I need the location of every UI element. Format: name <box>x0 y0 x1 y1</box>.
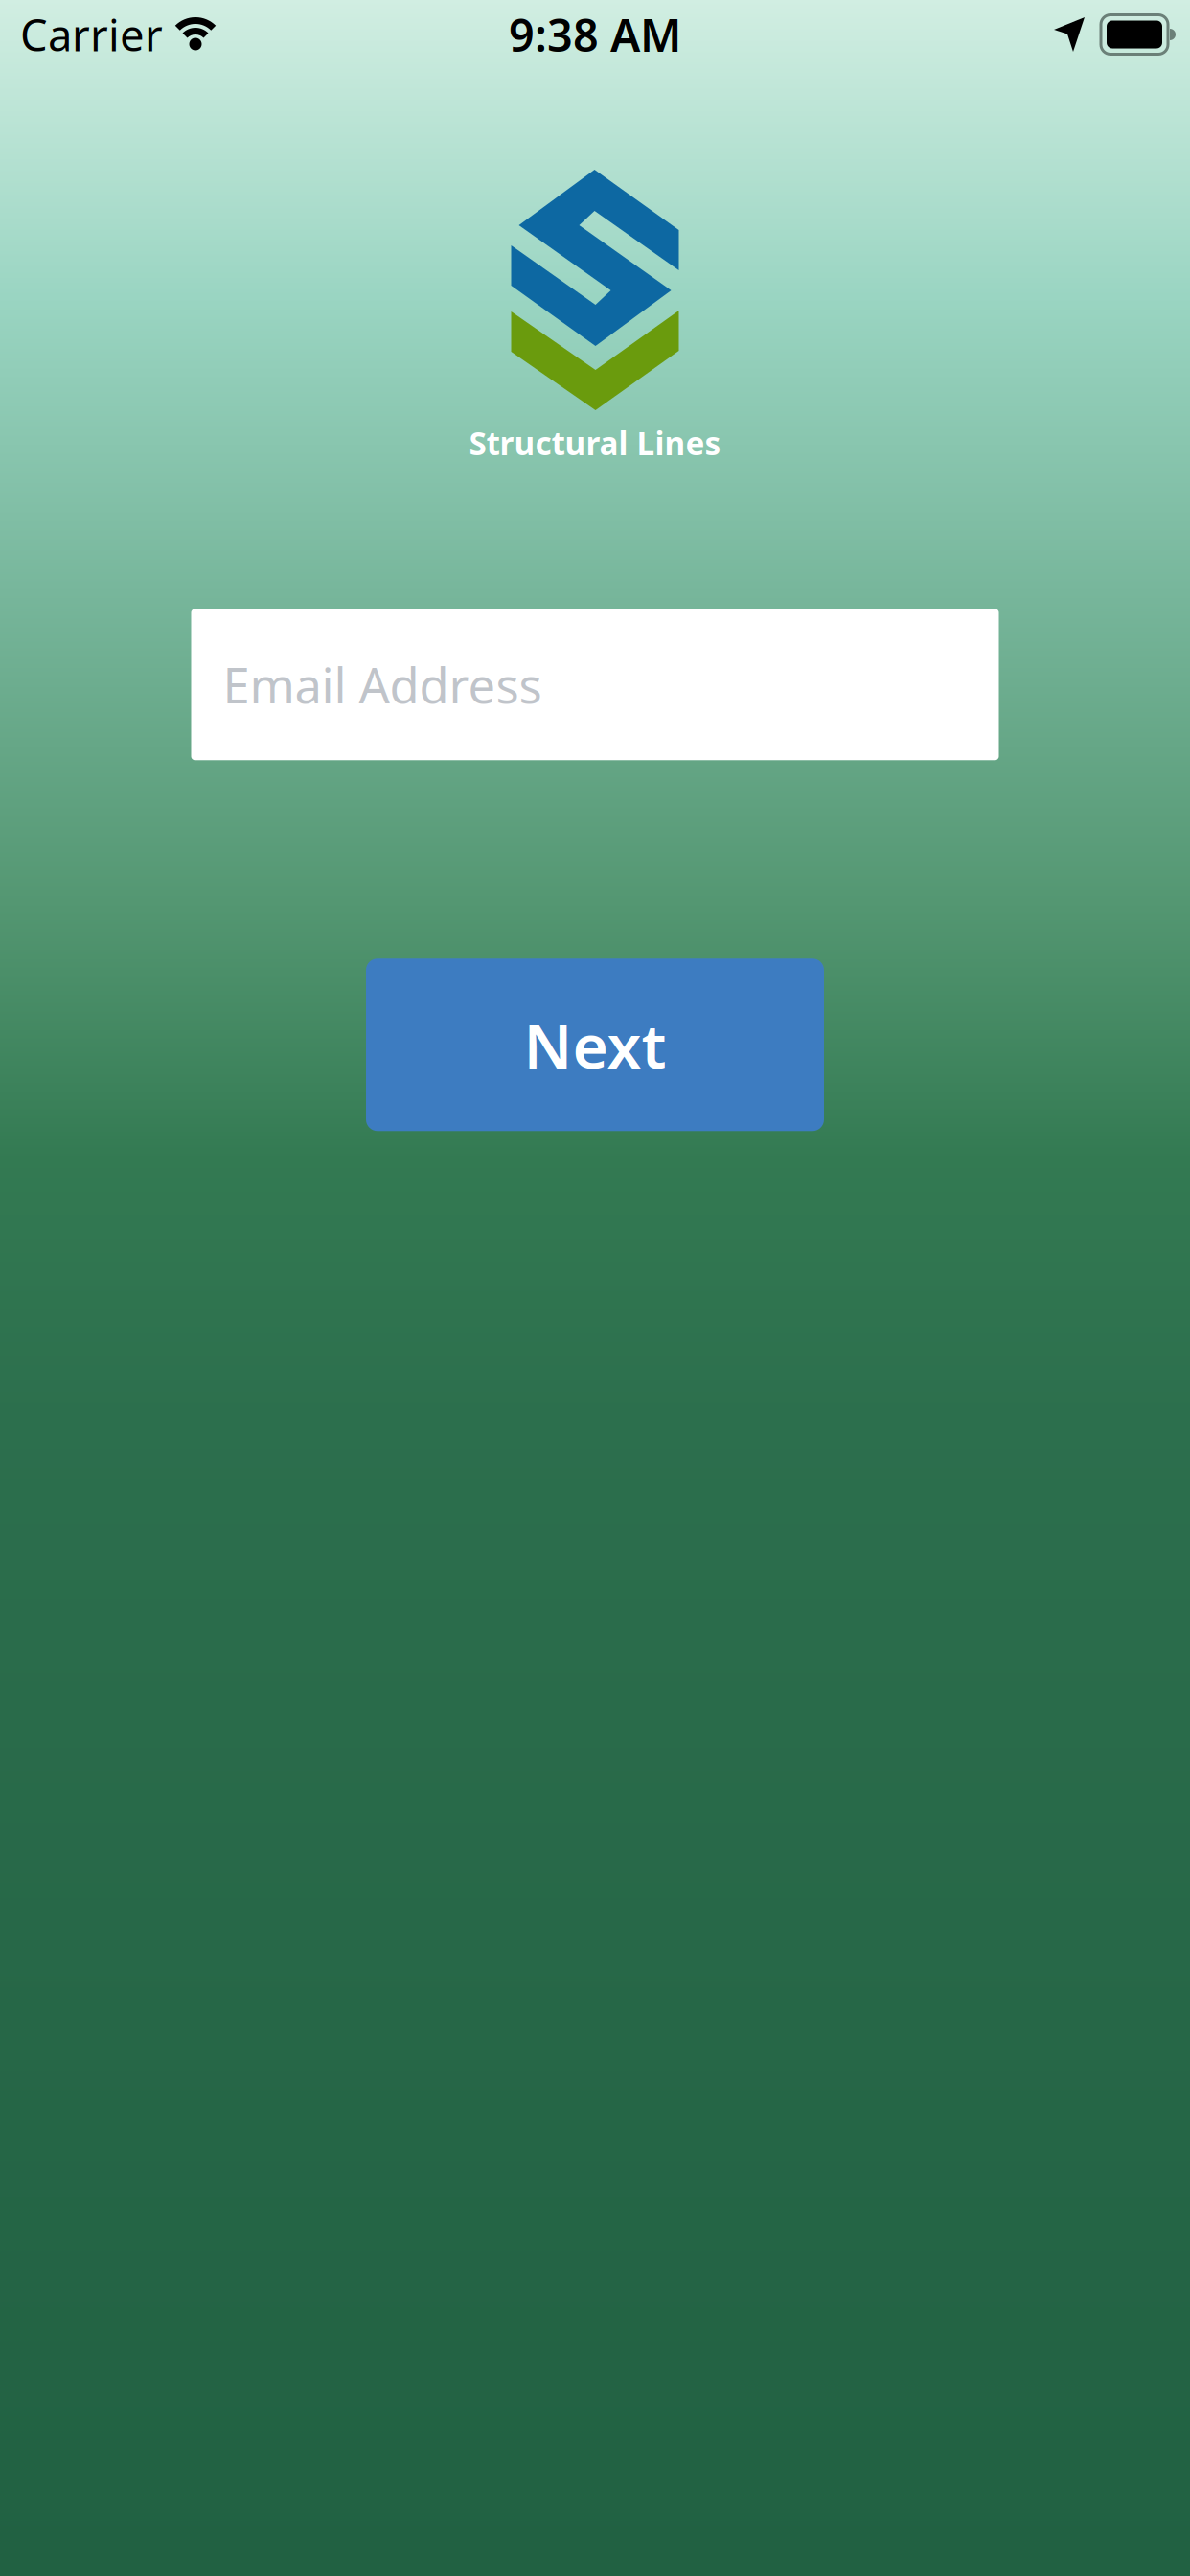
staticText: Carrier <box>20 6 163 63</box>
button[interactable]: Next <box>366 959 824 1131</box>
staticText: Next <box>524 1004 666 1086</box>
staticText: 9:38 AM <box>509 5 681 64</box>
button[interactable]: Email Address <box>191 609 999 760</box>
staticText: Structural Lines <box>469 422 721 464</box>
staticText: Email Address <box>223 652 542 717</box>
